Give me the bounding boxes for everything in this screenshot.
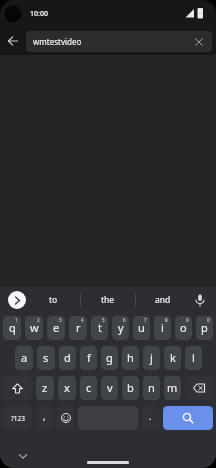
staticText: i <box>161 320 164 335</box>
staticText: to <box>49 294 58 306</box>
button[interactable] <box>163 406 213 430</box>
staticText: 6 <box>123 317 126 323</box>
button[interactable] <box>8 291 26 309</box>
staticText: 1 <box>15 317 18 323</box>
button[interactable]: p <box>196 316 213 340</box>
staticText: a <box>21 350 28 365</box>
button[interactable] <box>3 376 32 400</box>
button[interactable]: . <box>142 406 159 430</box>
staticText: 8 <box>165 317 168 323</box>
staticText: 10:00 <box>30 9 48 19</box>
staticText: f <box>87 350 91 365</box>
button[interactable]: a <box>15 346 33 370</box>
staticText: 3 <box>59 317 62 323</box>
button[interactable]: m <box>164 376 181 400</box>
button[interactable]: y <box>112 316 129 340</box>
button[interactable]: o <box>175 316 192 340</box>
staticText: b <box>127 380 134 395</box>
staticText: l <box>192 350 195 365</box>
staticText: m <box>167 380 178 395</box>
button[interactable]: the <box>81 287 135 313</box>
staticText: u <box>138 320 145 335</box>
button[interactable]: c <box>80 376 97 400</box>
button[interactable] <box>14 449 32 467</box>
staticText: c <box>86 380 92 395</box>
staticText: t <box>98 320 102 335</box>
staticText: x <box>64 380 70 395</box>
staticText: y <box>118 320 124 335</box>
button[interactable]: r <box>69 316 87 340</box>
button[interactable]: g <box>101 346 118 370</box>
staticText: r <box>76 320 81 335</box>
staticText: q <box>9 320 16 335</box>
button[interactable]: d <box>59 346 76 370</box>
button[interactable]: wmtestvideo <box>26 31 212 52</box>
staticText: p <box>201 320 208 335</box>
staticText: s <box>43 350 49 365</box>
button[interactable]: to <box>26 287 80 313</box>
staticText: o <box>180 320 187 335</box>
staticText: h <box>127 350 134 365</box>
button[interactable]: k <box>164 346 181 370</box>
button[interactable] <box>185 376 213 400</box>
button[interactable]: t <box>91 316 108 340</box>
staticText: k <box>170 350 176 365</box>
button[interactable]: e <box>47 316 65 340</box>
staticText: v <box>107 380 113 395</box>
button[interactable] <box>192 292 208 308</box>
staticText: d <box>64 350 71 365</box>
button[interactable]: i <box>154 316 171 340</box>
staticText: w <box>30 320 39 335</box>
staticText: the <box>101 294 115 306</box>
button[interactable]: and <box>136 287 190 313</box>
staticText: 7 <box>144 317 147 323</box>
button[interactable] <box>57 406 74 430</box>
staticText: e <box>53 320 60 335</box>
staticText: 2 <box>37 317 40 323</box>
button[interactable] <box>191 34 207 50</box>
button[interactable] <box>0 28 26 54</box>
button[interactable]: j <box>143 346 160 370</box>
staticText: ?123 <box>11 414 25 423</box>
button[interactable]: v <box>101 376 118 400</box>
button[interactable]: ?123 <box>3 406 32 430</box>
staticText: 0 <box>207 317 210 323</box>
button[interactable]: s <box>37 346 55 370</box>
staticText: and <box>155 294 171 306</box>
staticText: , <box>43 410 46 422</box>
button[interactable]: q <box>3 316 21 340</box>
button[interactable]: n <box>143 376 160 400</box>
button[interactable]: u <box>133 316 150 340</box>
button[interactable]: x <box>58 376 76 400</box>
button[interactable]: f <box>80 346 97 370</box>
button[interactable]: w <box>25 316 43 340</box>
staticText: . <box>149 410 152 422</box>
staticText: z <box>42 380 48 395</box>
staticText: g <box>106 350 113 365</box>
staticText: 9 <box>186 317 189 323</box>
staticText: 4 <box>81 317 84 323</box>
button[interactable]: , <box>36 406 53 430</box>
button[interactable]: h <box>122 346 139 370</box>
button[interactable]: l <box>185 346 202 370</box>
button[interactable]: b <box>122 376 139 400</box>
staticText: wmtestvideo <box>33 36 82 47</box>
staticText: 5 <box>102 317 105 323</box>
staticText: n <box>148 380 155 395</box>
staticText: j <box>150 350 153 365</box>
button[interactable]: z <box>36 376 54 400</box>
